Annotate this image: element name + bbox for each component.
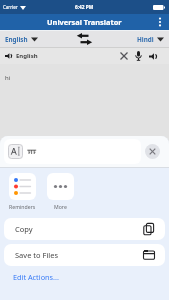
staticText: English xyxy=(5,35,28,44)
button[interactable]: English xyxy=(5,35,38,44)
button[interactable]: Copy xyxy=(4,218,165,240)
button[interactable] xyxy=(155,17,165,27)
button[interactable] xyxy=(120,52,128,60)
staticText: Copy xyxy=(15,224,33,234)
staticText: Carrier xyxy=(3,4,18,10)
staticText: Universal Translator xyxy=(47,17,122,27)
button[interactable] xyxy=(145,144,160,159)
staticText: Hindi xyxy=(137,35,154,44)
staticText: More xyxy=(54,203,67,210)
button[interactable]: Hindi xyxy=(137,35,164,44)
button[interactable] xyxy=(76,33,93,45)
staticText: English xyxy=(16,52,38,60)
staticText: 6:42 PM xyxy=(75,4,94,11)
staticText: hi xyxy=(5,74,11,82)
button[interactable] xyxy=(149,53,158,60)
staticText: Reminders xyxy=(9,203,36,210)
button[interactable]: Reminders xyxy=(9,173,36,210)
button[interactable]: More xyxy=(47,173,74,210)
button[interactable]: Edit Actions... xyxy=(13,272,59,282)
button[interactable]: Save to Files xyxy=(4,244,165,266)
staticText: Save to Files xyxy=(15,250,59,260)
button[interactable] xyxy=(135,51,142,61)
